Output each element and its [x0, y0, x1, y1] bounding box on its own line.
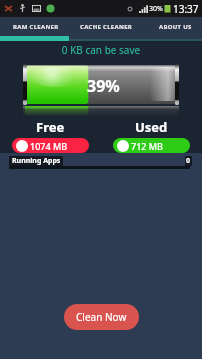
staticText: Free — [36, 118, 65, 136]
button[interactable]: RAM CLEANER — [0, 17, 72, 36]
button[interactable]: 712 MB — [113, 138, 190, 153]
button[interactable]: CACHE CLEANER — [72, 17, 140, 36]
staticText: 13:37 — [173, 2, 199, 16]
button[interactable]: Clean Now — [64, 304, 139, 330]
staticText: 30% — [149, 4, 163, 14]
staticText: 1074 MB — [30, 140, 68, 152]
staticText: 0 — [186, 156, 191, 166]
staticText: Running Apps — [12, 156, 61, 166]
staticText: CACHE CLEANER — [80, 23, 133, 31]
staticText: 39% — [87, 75, 120, 97]
staticText: 0 KB can be save — [0, 43, 202, 57]
staticText: ABOUT US — [159, 23, 192, 31]
staticText: RAM CLEANER — [13, 23, 59, 31]
staticText: 712 MB — [131, 140, 163, 152]
button[interactable]: ABOUT US — [149, 17, 202, 36]
button[interactable]: 1074 MB — [12, 138, 89, 153]
staticText: Used — [135, 118, 168, 136]
staticText: Clean Now — [76, 310, 127, 324]
